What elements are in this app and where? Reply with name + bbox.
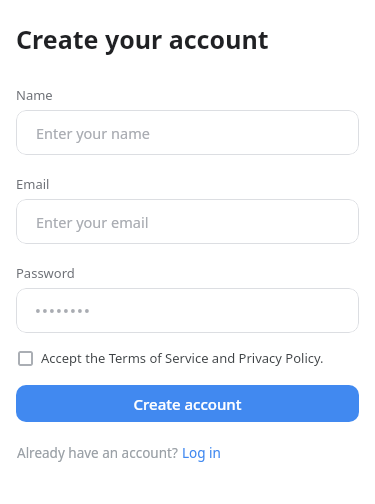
button[interactable]: Create account: [16, 385, 359, 422]
staticText: Enter your name: [36, 123, 150, 143]
button[interactable]: [16, 288, 359, 333]
staticText: Accept the Terms of Service and Privacy …: [41, 349, 324, 367]
staticText: Create account: [133, 394, 242, 414]
button[interactable]: Log in: [182, 444, 221, 462]
other: Accept terms checkbox: [18, 351, 33, 366]
staticText: Already have an account?: [17, 444, 182, 462]
staticText: Name: [16, 86, 53, 104]
staticText: Create your account: [16, 22, 269, 56]
staticText: Enter your email: [36, 212, 149, 232]
staticText: Email: [16, 175, 50, 193]
staticText: Password: [16, 264, 75, 282]
staticText: Log in: [182, 444, 221, 462]
button[interactable]: Accept terms checkbox: [16, 349, 359, 367]
button[interactable]: Enter your name: [16, 110, 359, 155]
button[interactable]: Enter your email: [16, 199, 359, 244]
